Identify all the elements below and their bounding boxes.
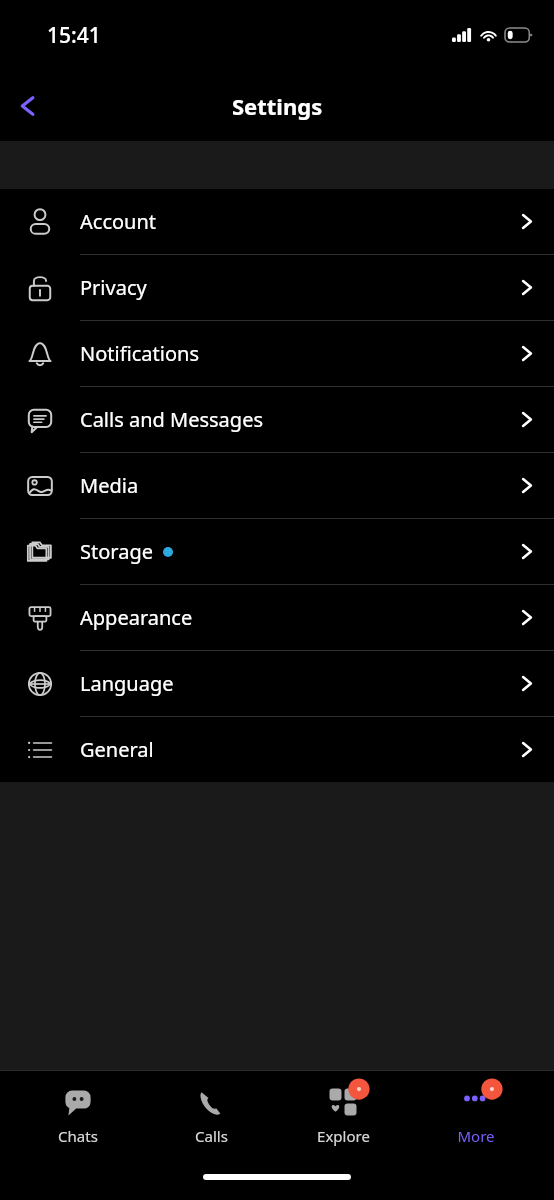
button[interactable]: Media xyxy=(0,453,554,519)
staticText: Notifications xyxy=(80,340,199,367)
button[interactable]: Appearance xyxy=(0,585,554,651)
button[interactable]: Chats xyxy=(23,1071,133,1161)
button[interactable]: Notifications xyxy=(0,321,554,387)
staticText: Language xyxy=(80,670,174,697)
button[interactable]: Language xyxy=(0,651,554,717)
staticText: Appearance xyxy=(80,604,193,631)
staticText: Privacy xyxy=(80,274,147,301)
staticText: More xyxy=(457,1126,495,1146)
button[interactable]: Privacy xyxy=(0,255,554,321)
button[interactable]: Calls xyxy=(156,1071,266,1161)
button[interactable]: General xyxy=(0,717,554,782)
button[interactable]: Storage xyxy=(0,519,554,585)
staticText: Chats xyxy=(58,1126,98,1146)
button[interactable]: Explore xyxy=(288,1071,398,1161)
button[interactable]: Back xyxy=(0,78,56,134)
button[interactable]: More xyxy=(421,1071,531,1161)
button[interactable]: Calls and Messages xyxy=(0,387,554,453)
staticText: Explore xyxy=(317,1126,370,1146)
staticText: Settings xyxy=(232,91,323,121)
staticText: General xyxy=(80,736,154,763)
staticText: Media xyxy=(80,472,139,499)
staticText: Account xyxy=(80,208,157,235)
staticText: Calls xyxy=(195,1126,228,1146)
staticText: Calls and Messages xyxy=(80,406,263,433)
staticText: Storage xyxy=(80,538,153,565)
staticText: 15:41 xyxy=(47,21,101,50)
button[interactable]: Account xyxy=(0,189,554,255)
